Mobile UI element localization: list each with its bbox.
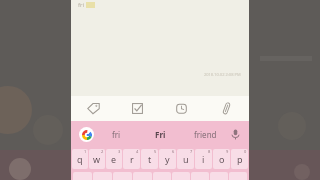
- button[interactable]: u: [177, 149, 194, 169]
- staticText: 6: [172, 149, 175, 154]
- button[interactable]: friend: [183, 121, 228, 147]
- staticText: r: [130, 153, 134, 165]
- button[interactable]: y: [159, 149, 176, 169]
- staticText: 2: [101, 149, 104, 154]
- staticText: 4: [136, 149, 139, 154]
- staticText: p: [237, 153, 243, 165]
- staticText: Fri: [155, 129, 166, 140]
- button[interactable]: t: [141, 149, 158, 169]
- staticText: y: [165, 153, 170, 165]
- button[interactable]: q: [72, 149, 88, 169]
- staticText: 1: [84, 149, 87, 154]
- staticText: 8: [208, 149, 211, 154]
- staticText: w: [93, 153, 101, 165]
- staticText: q: [77, 153, 83, 165]
- staticText: o: [219, 153, 225, 165]
- staticText: fri: [78, 1, 85, 9]
- staticText: e: [111, 153, 117, 165]
- staticText: 5: [154, 149, 157, 154]
- button[interactable]: Checklist: [115, 96, 159, 121]
- staticText: i: [202, 153, 205, 165]
- button[interactable]: Attach file: [204, 96, 249, 121]
- button[interactable]: r: [123, 149, 140, 169]
- staticText: 3: [118, 149, 121, 154]
- staticText: fri: [112, 129, 121, 140]
- button[interactable]: Voice input: [228, 127, 242, 141]
- button[interactable]: p: [231, 149, 248, 169]
- button[interactable]: i: [195, 149, 212, 169]
- staticText: 2018.10.02 2:08 PM: [204, 72, 241, 77]
- button[interactable]: e: [106, 149, 122, 169]
- button[interactable]: fri: [71, 0, 249, 96]
- staticText: u: [183, 153, 189, 165]
- button[interactable]: w: [89, 149, 105, 169]
- button[interactable]: Google search: [79, 127, 94, 142]
- button[interactable]: Reminder: [159, 96, 204, 121]
- staticText: 7: [190, 149, 193, 154]
- button[interactable]: Fri: [138, 121, 183, 147]
- staticText: t: [148, 153, 152, 165]
- button[interactable]: fri: [94, 121, 138, 147]
- staticText: 9: [226, 149, 229, 154]
- staticText: 0: [244, 149, 247, 154]
- button[interactable]: o: [213, 149, 230, 169]
- staticText: friend: [194, 129, 217, 140]
- button[interactable]: Tag: [71, 96, 115, 121]
